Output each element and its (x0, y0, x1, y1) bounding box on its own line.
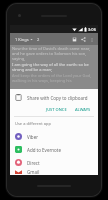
button[interactable]: ALWAYS (72, 105, 94, 114)
staticText: 3:06 (88, 27, 96, 32)
button[interactable]: Bookmark (70, 35, 79, 44)
button[interactable]: More options (88, 36, 95, 43)
staticText: Viber (27, 134, 39, 140)
staticText: Direct (27, 160, 40, 166)
button[interactable]: Gmail (10, 169, 98, 175)
button[interactable]: Add to Evernote (10, 143, 98, 156)
staticText: Share with Copy to clipboard (27, 95, 88, 101)
staticText: I am going the way of all the earth: so … (12, 62, 96, 72)
staticText: Use a different app (15, 121, 51, 126)
staticText: Add to Evernote (27, 147, 61, 153)
staticText: 1 Kings (15, 37, 29, 42)
staticText: Gmail (27, 169, 40, 175)
staticText: And keep the orders of the Lord your God… (12, 73, 96, 83)
button[interactable]: Share with Copy to clipboard (10, 92, 98, 103)
button[interactable]: Share (79, 35, 88, 44)
staticText: Now the time of David's death came near,… (12, 46, 96, 61)
button[interactable]: Viber (10, 130, 98, 143)
button[interactable]: 2 (37, 37, 40, 42)
button[interactable]: JUST ONCE (43, 105, 70, 114)
staticText: ALWAYS (75, 107, 91, 112)
button[interactable]: Direct (10, 156, 98, 169)
staticText: JUST ONCE (46, 107, 67, 112)
button[interactable]: 1 Kings (13, 36, 35, 43)
